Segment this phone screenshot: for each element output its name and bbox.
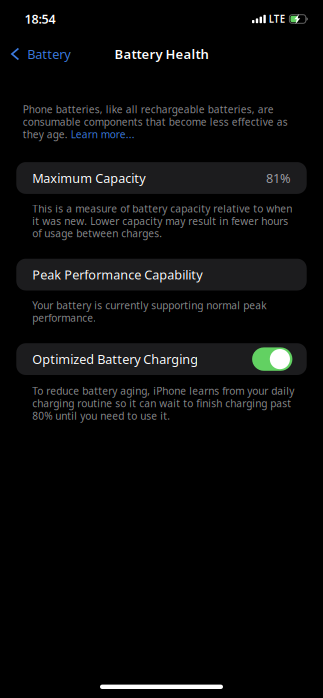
button[interactable]: Optimized Battery Charging [16, 343, 307, 375]
staticText: Your battery is currently supporting nor… [32, 298, 266, 325]
staticText: To reduce battery aging, iPhone learns f… [32, 384, 294, 423]
staticText: LTE [269, 12, 285, 26]
staticText: 81% [266, 169, 291, 187]
button[interactable]: Peak Performance Capability [16, 259, 307, 290]
staticText: This is a measure of battery capacity re… [32, 202, 292, 240]
staticText: Battery [27, 45, 71, 63]
staticText: Phone batteries, like all rechargeable b… [23, 102, 288, 141]
staticText: Peak Performance Capability [32, 266, 202, 283]
staticText: Battery Health [114, 45, 208, 63]
staticText: 18:54 [24, 10, 55, 28]
button[interactable]: Maximum Capacity [16, 162, 307, 194]
button[interactable]: Battery [0, 38, 81, 70]
staticText: Maximum Capacity [32, 169, 145, 187]
staticText: Optimized Battery Charging [32, 350, 198, 368]
